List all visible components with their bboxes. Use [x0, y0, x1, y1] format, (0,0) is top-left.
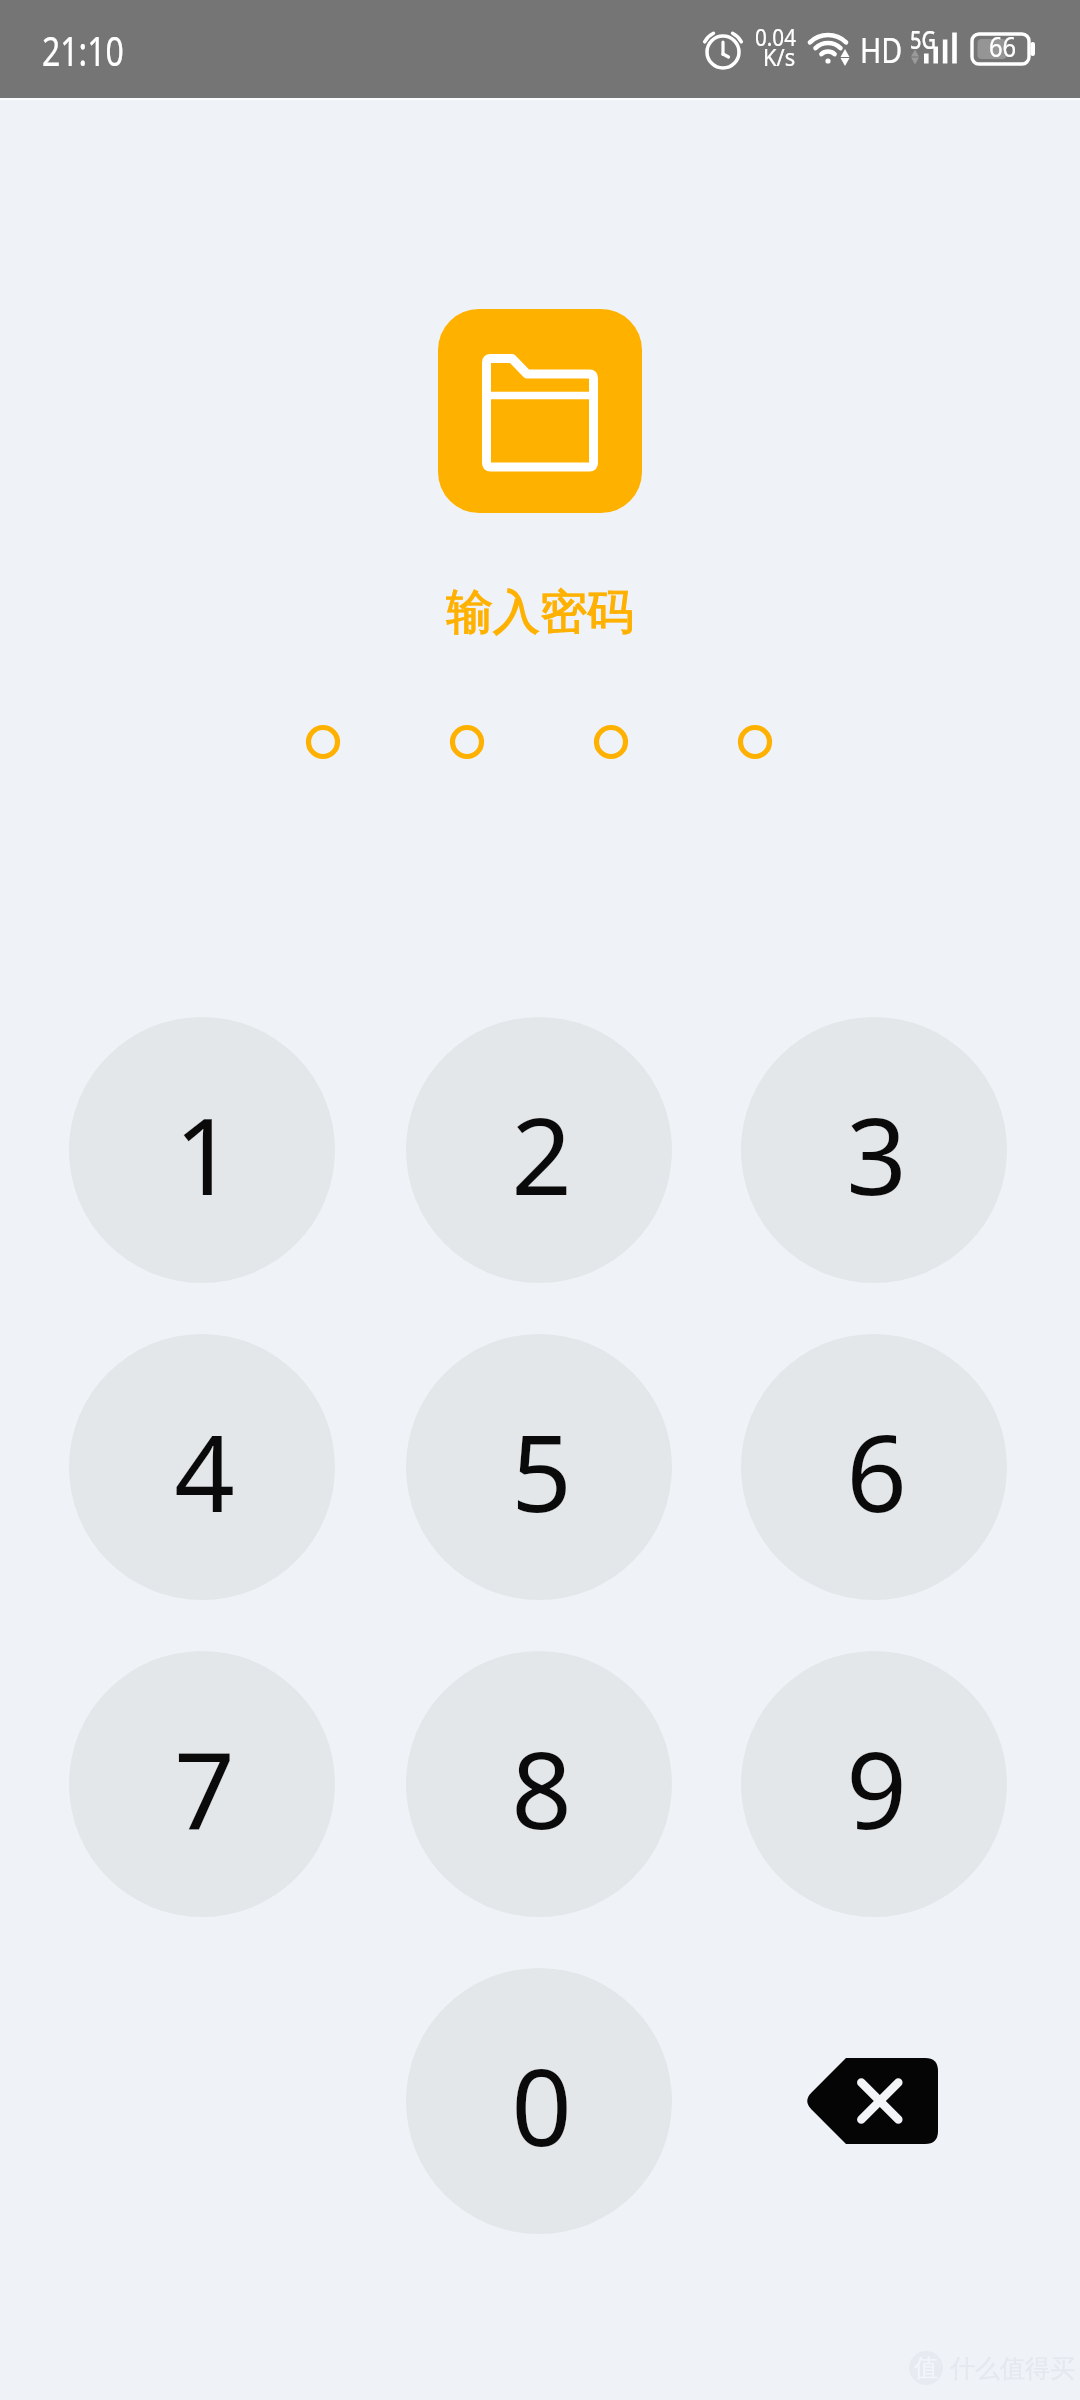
staticText: 什么值得买	[950, 2353, 1075, 2384]
staticText: 0	[511, 2033, 572, 2177]
button[interactable]: 7	[69, 1651, 335, 1917]
staticText: 7	[174, 1716, 235, 1860]
staticText: 5G	[910, 21, 936, 56]
staticText: 2	[511, 1082, 572, 1226]
button[interactable]: 0	[406, 1968, 672, 2234]
staticText: 21:10	[42, 23, 124, 77]
staticText: 1	[174, 1082, 235, 1226]
staticText: 6	[846, 1399, 907, 1543]
button[interactable]: 5	[406, 1334, 672, 1600]
staticText: 9	[846, 1716, 907, 1860]
staticText: 输入密码	[446, 583, 634, 642]
button[interactable]: 4	[69, 1334, 335, 1600]
button[interactable]: 6	[741, 1334, 1007, 1600]
staticText: 8	[511, 1716, 572, 1860]
button[interactable]: 8	[406, 1651, 672, 1917]
staticText: 0.04	[755, 20, 796, 53]
button[interactable]: 2	[406, 1017, 672, 1283]
button[interactable]: 9	[741, 1651, 1007, 1917]
button[interactable]: Backspace	[741, 1968, 1007, 2234]
staticText: 5	[511, 1399, 572, 1543]
staticText: 66	[989, 28, 1016, 65]
staticText: 输入密码	[446, 583, 634, 642]
staticText: 值	[914, 2353, 938, 2383]
staticText: 3	[846, 1082, 907, 1226]
button[interactable]: 1	[69, 1017, 335, 1283]
staticText: HD	[860, 26, 903, 74]
staticText: K/s	[763, 41, 795, 72]
staticText: 4	[174, 1399, 235, 1543]
button[interactable]: 3	[741, 1017, 1007, 1283]
